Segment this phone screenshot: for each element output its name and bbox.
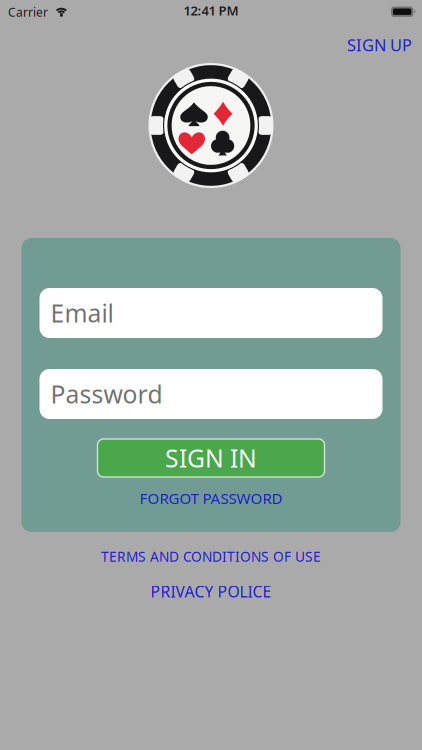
staticText: PRIVACY POLICE [150,581,271,602]
staticText: 12:41 PM [183,2,238,19]
button[interactable]: SIGN IN [97,439,324,477]
staticText: Password [50,377,162,411]
staticText: SIGN IN [165,441,257,475]
staticText: Carrier [8,4,48,20]
button[interactable]: Email [39,288,382,338]
button[interactable]: SIGN UP [337,28,422,62]
button[interactable]: Password [39,369,382,419]
staticText: Email [50,296,113,330]
button[interactable]: TERMS AND CONDITIONS OF USE [101,543,321,570]
button[interactable]: PRIVACY POLICE [150,577,271,606]
staticText: FORGOT PASSWORD [139,488,282,508]
staticText: TERMS AND CONDITIONS OF USE [101,547,321,566]
button[interactable]: FORGOT PASSWORD [139,484,282,512]
staticText: SIGN UP [347,34,412,56]
